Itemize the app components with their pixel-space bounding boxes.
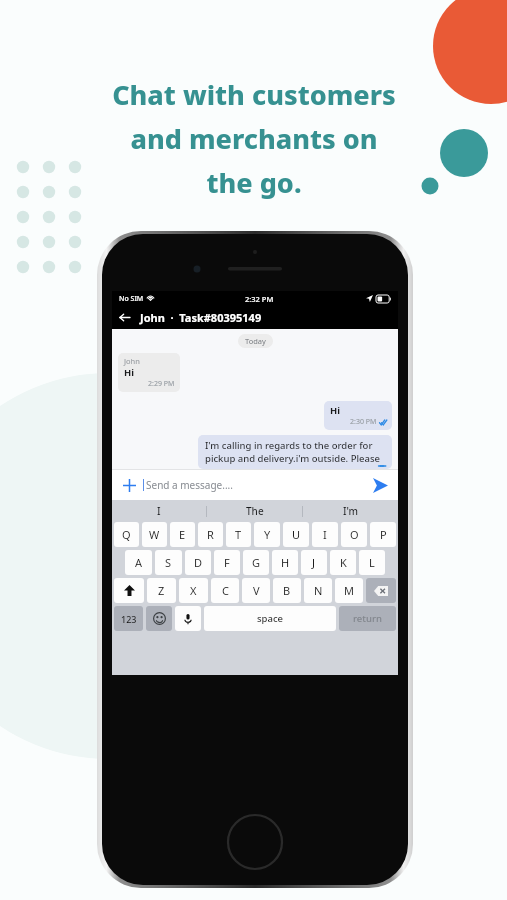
staticText: 2:29 PM: [148, 379, 175, 389]
button[interactable]: I: [312, 522, 338, 547]
button[interactable]: J: [301, 550, 327, 575]
button[interactable]: Dictate: [175, 606, 201, 631]
button[interactable]: M: [335, 578, 363, 603]
staticText: S: [165, 555, 172, 570]
button[interactable]: Back: [112, 306, 136, 329]
staticText: Today: [245, 336, 266, 346]
button[interactable]: The: [207, 500, 302, 522]
staticText: E: [179, 527, 186, 542]
button[interactable]: S: [155, 550, 182, 575]
button[interactable]: Z: [147, 578, 176, 603]
button[interactable]: return: [339, 606, 396, 631]
staticText: Z: [158, 583, 165, 598]
staticText: M: [344, 583, 354, 598]
staticText: D: [194, 555, 203, 570]
staticText: John · Task#80395149: [140, 310, 262, 325]
staticText: The: [246, 504, 264, 518]
staticText: U: [292, 527, 301, 542]
staticText: Hi: [124, 366, 135, 379]
button[interactable]: Y: [254, 522, 280, 547]
staticText: 2:32 PM: [245, 294, 274, 304]
staticText: space: [257, 612, 284, 625]
staticText: I: [323, 527, 327, 542]
button[interactable]: Shift: [114, 578, 144, 603]
staticText: O: [350, 527, 359, 542]
staticText: A: [135, 555, 143, 570]
staticText: V: [253, 583, 260, 598]
staticText: I: [157, 504, 161, 518]
staticText: R: [207, 527, 214, 542]
button[interactable]: O: [341, 522, 367, 547]
staticText: J: [312, 555, 316, 570]
button[interactable]: C: [211, 578, 239, 603]
staticText: Chat with customers and merchants on the…: [112, 76, 396, 200]
button[interactable]: 123: [114, 606, 143, 631]
button[interactable]: W: [142, 522, 167, 547]
button[interactable]: L: [359, 550, 385, 575]
button[interactable]: T: [226, 522, 251, 547]
button[interactable]: Backspace: [366, 578, 396, 603]
button[interactable]: U: [283, 522, 309, 547]
button[interactable]: F: [214, 550, 240, 575]
staticText: H: [281, 555, 290, 570]
staticText: B: [283, 583, 291, 598]
button[interactable]: Send: [369, 474, 391, 496]
staticText: Hi: [330, 404, 341, 417]
staticText: Send a message....: [146, 478, 233, 492]
button[interactable]: P: [370, 522, 396, 547]
button[interactable]: Hi: [324, 401, 392, 430]
button[interactable]: John: [118, 353, 180, 392]
staticText: I'm: [343, 504, 359, 518]
button[interactable]: I'm: [303, 500, 398, 522]
button[interactable]: I: [112, 500, 206, 522]
button[interactable]: N: [304, 578, 332, 603]
staticText: Q: [122, 527, 131, 542]
button[interactable]: V: [242, 578, 270, 603]
staticText: X: [190, 583, 197, 598]
staticText: C: [222, 583, 229, 598]
staticText: 2:30 PM: [350, 417, 377, 427]
button[interactable]: A: [125, 550, 152, 575]
button[interactable]: B: [273, 578, 301, 603]
staticText: W: [149, 527, 160, 542]
staticText: John: [124, 356, 140, 366]
staticText: 123: [121, 613, 137, 625]
staticText: N: [314, 583, 323, 598]
staticText: return: [353, 612, 382, 625]
button[interactable]: H: [272, 550, 298, 575]
button[interactable]: D: [185, 550, 211, 575]
staticText: L: [369, 555, 375, 570]
staticText: G: [252, 555, 261, 570]
button[interactable]: G: [243, 550, 269, 575]
button[interactable]: E: [170, 522, 195, 547]
staticText: F: [224, 555, 230, 570]
button[interactable]: Emoji: [146, 606, 172, 631]
button[interactable]: space: [204, 606, 336, 631]
staticText: T: [235, 527, 242, 542]
button[interactable]: K: [330, 550, 356, 575]
staticText: No SIM: [119, 294, 144, 304]
button[interactable]: X: [179, 578, 208, 603]
button[interactable]: I'm calling in regards to the order for …: [198, 435, 392, 469]
button[interactable]: Attach: [119, 475, 139, 495]
staticText: I'm calling in regards to the order for …: [205, 439, 386, 466]
staticText: Y: [264, 527, 271, 542]
staticText: K: [340, 555, 347, 570]
button[interactable]: Q: [114, 522, 139, 547]
staticText: P: [380, 527, 387, 542]
button[interactable]: R: [198, 522, 223, 547]
